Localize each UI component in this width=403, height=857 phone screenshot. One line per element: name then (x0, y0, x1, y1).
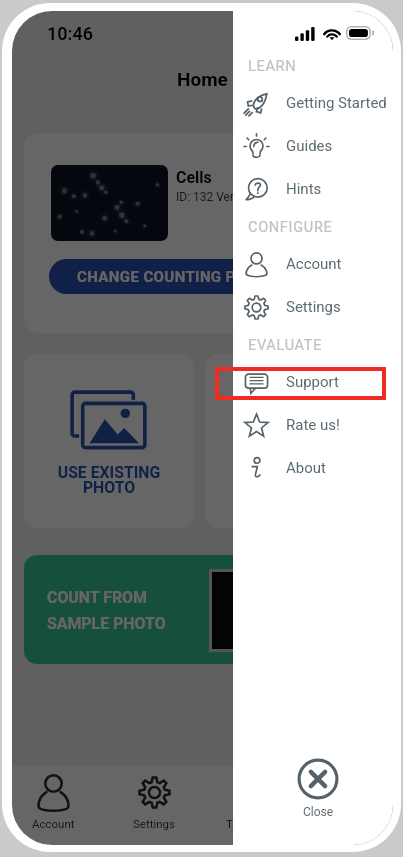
button[interactable]: Rate us! (233, 404, 393, 446)
staticText: Account (286, 255, 342, 273)
staticText: ID: 132 Version 1 (176, 190, 267, 204)
button[interactable]: Cells (24, 133, 382, 333)
button[interactable] (205, 354, 382, 528)
button[interactable]: USE EXISTING PHOTO (24, 354, 194, 528)
staticText: USE EXISTING PHOTO (24, 463, 194, 497)
staticText: Rate us! (286, 416, 340, 434)
staticText: Getting Started (286, 94, 387, 112)
button[interactable]: Account (233, 243, 393, 285)
staticText: CHANGE COUNTING PARAMETERS (77, 268, 327, 286)
staticText: Guides (286, 137, 333, 155)
staticText: Support (286, 373, 339, 391)
staticText: Techniques (226, 817, 285, 830)
staticText: Settings (286, 298, 341, 316)
button[interactable]: Getting Started (233, 82, 393, 124)
staticText: Hints (286, 180, 322, 198)
button[interactable]: Hints (233, 168, 393, 210)
staticText: Home (177, 68, 228, 90)
staticText: COUNT FROM SAMPLE PHOTO (47, 588, 166, 633)
button[interactable]: Support (233, 361, 393, 403)
other: Close (297, 758, 339, 800)
button[interactable]: Settings (104, 775, 204, 830)
staticText: CONFIGURE (248, 219, 333, 236)
button[interactable]: Settings (233, 286, 393, 328)
staticText: About (286, 459, 326, 477)
staticText: Cells (176, 168, 212, 187)
staticText: EVALUATE (248, 337, 323, 354)
staticText: Close (303, 805, 334, 819)
button[interactable]: About (233, 447, 393, 489)
button[interactable]: COUNT FROM SAMPLE PHOTO (24, 555, 382, 664)
button[interactable]: Close (297, 758, 339, 819)
button[interactable]: Techniques (205, 775, 305, 830)
button[interactable]: CHANGE COUNTING PARAMETERS (49, 259, 355, 294)
staticText: Account (32, 817, 75, 830)
staticText: LEARN (248, 58, 297, 75)
staticText: Settings (133, 817, 175, 830)
staticText: 10:46 (47, 23, 94, 44)
button[interactable]: Account (12, 775, 103, 830)
button[interactable]: About (306, 775, 393, 830)
button[interactable]: Guides (233, 125, 393, 167)
